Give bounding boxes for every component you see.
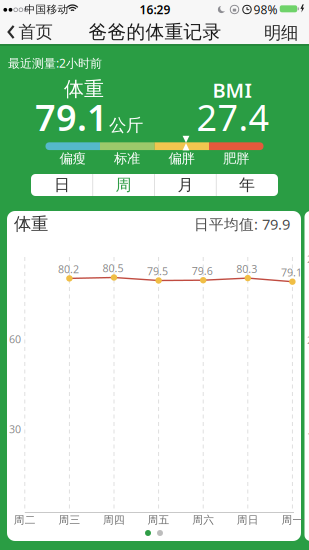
staticText: 周四 (103, 513, 125, 526)
staticText: 周六 (192, 513, 214, 526)
staticText: 中国移动 (24, 3, 68, 16)
staticText: 79.1 (281, 265, 302, 279)
staticText: 周日 (237, 513, 259, 526)
staticText: 79.6 (192, 264, 213, 278)
staticText: 79.1 (35, 93, 108, 141)
staticText: 周五 (148, 513, 170, 526)
staticText: 80.5 (102, 261, 123, 275)
button[interactable]: 明细 (253, 18, 309, 48)
staticText: 日平均值: 79.9 (194, 214, 290, 234)
staticText: 80.2 (58, 262, 79, 276)
staticText: 偏胖 (168, 150, 194, 167)
staticText: 最近测量:2小时前 (8, 55, 102, 71)
button[interactable]: 日 (31, 174, 92, 196)
staticText: 爸爸的体重记录 (88, 20, 221, 43)
staticText: 明细 (264, 22, 298, 44)
staticText: 98% (253, 1, 277, 17)
staticText: 30 (9, 422, 21, 436)
staticText: 首页 (18, 21, 52, 43)
staticText: 60 (9, 332, 21, 346)
staticText: 1 (307, 429, 309, 443)
staticText: 周 (116, 175, 132, 195)
staticText: 年 (239, 175, 255, 195)
staticText: 日 (54, 175, 70, 195)
staticText: 2 (307, 333, 309, 347)
button[interactable]: 月 (155, 174, 216, 196)
staticText: BMI (212, 77, 251, 103)
staticText: 体重 (64, 77, 104, 101)
staticText: 周三 (58, 513, 80, 526)
staticText: 27.4 (196, 93, 269, 141)
staticText: 80.3 (236, 262, 257, 276)
staticText: 偏瘦 (59, 150, 85, 167)
button[interactable]: 年 (217, 174, 278, 196)
staticText: 79.5 (147, 264, 168, 278)
button[interactable]: 返回首页 (0, 0, 60, 44)
staticText: 肥胖 (223, 150, 249, 167)
staticText: 公斤 (109, 115, 143, 136)
staticText: 体重 (14, 213, 48, 235)
staticText: 月 (177, 175, 193, 195)
staticText: 周二 (14, 513, 36, 526)
staticText: 2 (307, 252, 309, 266)
staticText: 标准 (114, 150, 140, 167)
staticText: 周一 (281, 513, 303, 526)
button[interactable]: 周 (93, 174, 154, 196)
staticText: 16:29 (139, 1, 170, 17)
